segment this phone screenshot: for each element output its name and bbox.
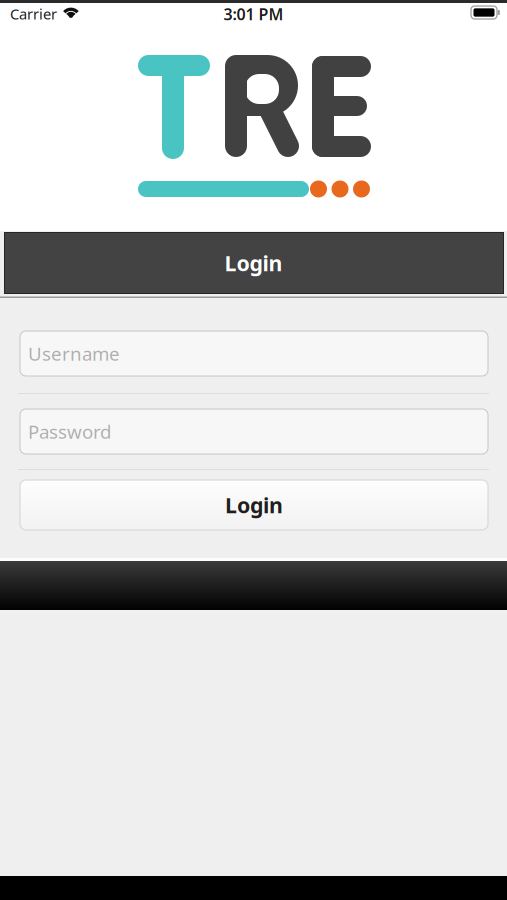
staticText: Username <box>28 341 120 366</box>
button[interactable]: Login <box>20 480 488 530</box>
button[interactable]: Username <box>20 331 488 376</box>
staticText: 3:01 PM <box>223 3 283 25</box>
staticText: Login <box>225 491 283 519</box>
staticText: Login <box>224 249 282 277</box>
staticText: Carrier <box>10 4 57 23</box>
staticText: Password <box>28 419 111 444</box>
button[interactable]: Password <box>20 409 488 454</box>
